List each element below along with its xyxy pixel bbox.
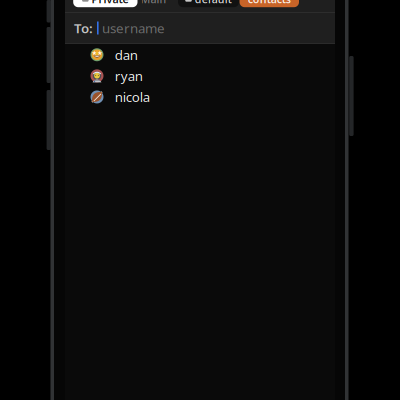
staticText: dan <box>115 46 138 64</box>
button[interactable]: default <box>178 0 239 7</box>
button[interactable]: ryan <box>65 65 335 86</box>
button[interactable]: Main <box>139 0 167 7</box>
staticText: ryan <box>115 67 143 85</box>
staticText: default <box>195 0 232 6</box>
staticText: Main <box>140 0 166 6</box>
staticText: Private <box>92 0 129 6</box>
button[interactable]: nicola <box>65 86 335 107</box>
staticText: contacts <box>248 0 291 6</box>
staticText: nicola <box>115 88 150 106</box>
button[interactable]: Private <box>73 0 137 7</box>
button[interactable]: dan <box>65 44 335 65</box>
staticText: To: <box>74 19 93 37</box>
staticText: username <box>102 19 165 37</box>
button[interactable]: contacts <box>240 0 299 7</box>
